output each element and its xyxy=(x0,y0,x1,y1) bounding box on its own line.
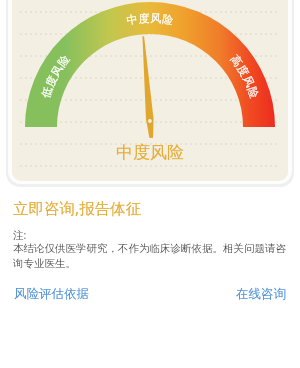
staticText: 注: xyxy=(13,228,27,242)
staticText: 风险评估依据 xyxy=(14,286,89,302)
staticText: 立即咨询,报告体征 xyxy=(13,197,142,218)
staticText: 本结论仅供医学研究，不作为临床诊断依据。相关问题请咨询专业医生。 xyxy=(13,242,291,270)
button[interactable]: 在线咨询 xyxy=(235,283,287,305)
button[interactable]: 风险评估依据 xyxy=(13,283,90,305)
staticText: 在线咨询 xyxy=(236,286,286,302)
button[interactable]: 立即咨询,报告体征 xyxy=(0,195,300,220)
